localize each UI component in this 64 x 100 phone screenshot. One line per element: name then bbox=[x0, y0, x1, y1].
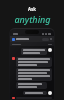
staticText: anything bbox=[14, 13, 51, 25]
staticText: Ask bbox=[28, 6, 36, 12]
button[interactable]: anything bbox=[0, 13, 64, 25]
button[interactable] bbox=[12, 91, 52, 95]
button[interactable] bbox=[12, 57, 52, 89]
button[interactable]: Assistant header bbox=[12, 36, 52, 42]
button[interactable] bbox=[12, 48, 52, 55]
button[interactable]: Ask bbox=[0, 6, 64, 12]
button[interactable] bbox=[12, 97, 52, 99]
